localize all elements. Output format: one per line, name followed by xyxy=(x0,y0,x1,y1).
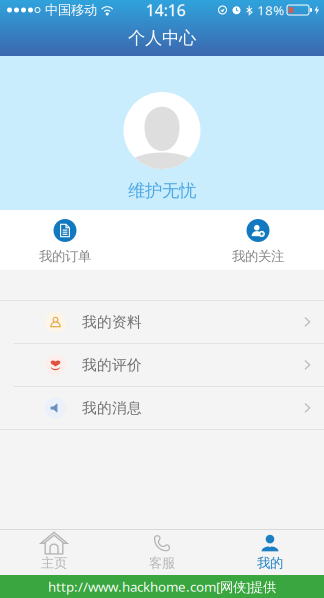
button[interactable]: 我的消息 xyxy=(0,387,324,429)
button[interactable]: 我的评价 xyxy=(0,344,324,386)
staticText: 维护无忧 xyxy=(128,180,196,201)
button[interactable]: 我的 xyxy=(216,530,324,575)
button[interactable]: 我的资料 xyxy=(0,301,324,343)
staticText: 我的评价 xyxy=(82,356,142,374)
staticText: 14:16 xyxy=(145,0,185,21)
button[interactable]: 我的订单 xyxy=(2,210,128,270)
staticText: http://www.hackhome.com[网侠]提供 xyxy=(48,578,276,595)
button[interactable]: 客服 xyxy=(108,530,216,575)
staticText: 我的关注 xyxy=(232,248,284,264)
staticText: 中国移动 xyxy=(45,2,97,18)
staticText: 我的订单 xyxy=(39,248,91,264)
staticText: 个人中心 xyxy=(128,27,196,49)
staticText: 主页 xyxy=(41,555,67,571)
staticText: 我的 xyxy=(257,555,283,571)
staticText: 我的资料 xyxy=(82,313,142,331)
staticText: 客服 xyxy=(149,555,175,571)
button[interactable]: 主页 xyxy=(0,530,108,575)
staticText: 我的消息 xyxy=(82,399,142,417)
button[interactable]: 我的关注 xyxy=(195,210,321,270)
staticText: 18% xyxy=(257,1,284,19)
